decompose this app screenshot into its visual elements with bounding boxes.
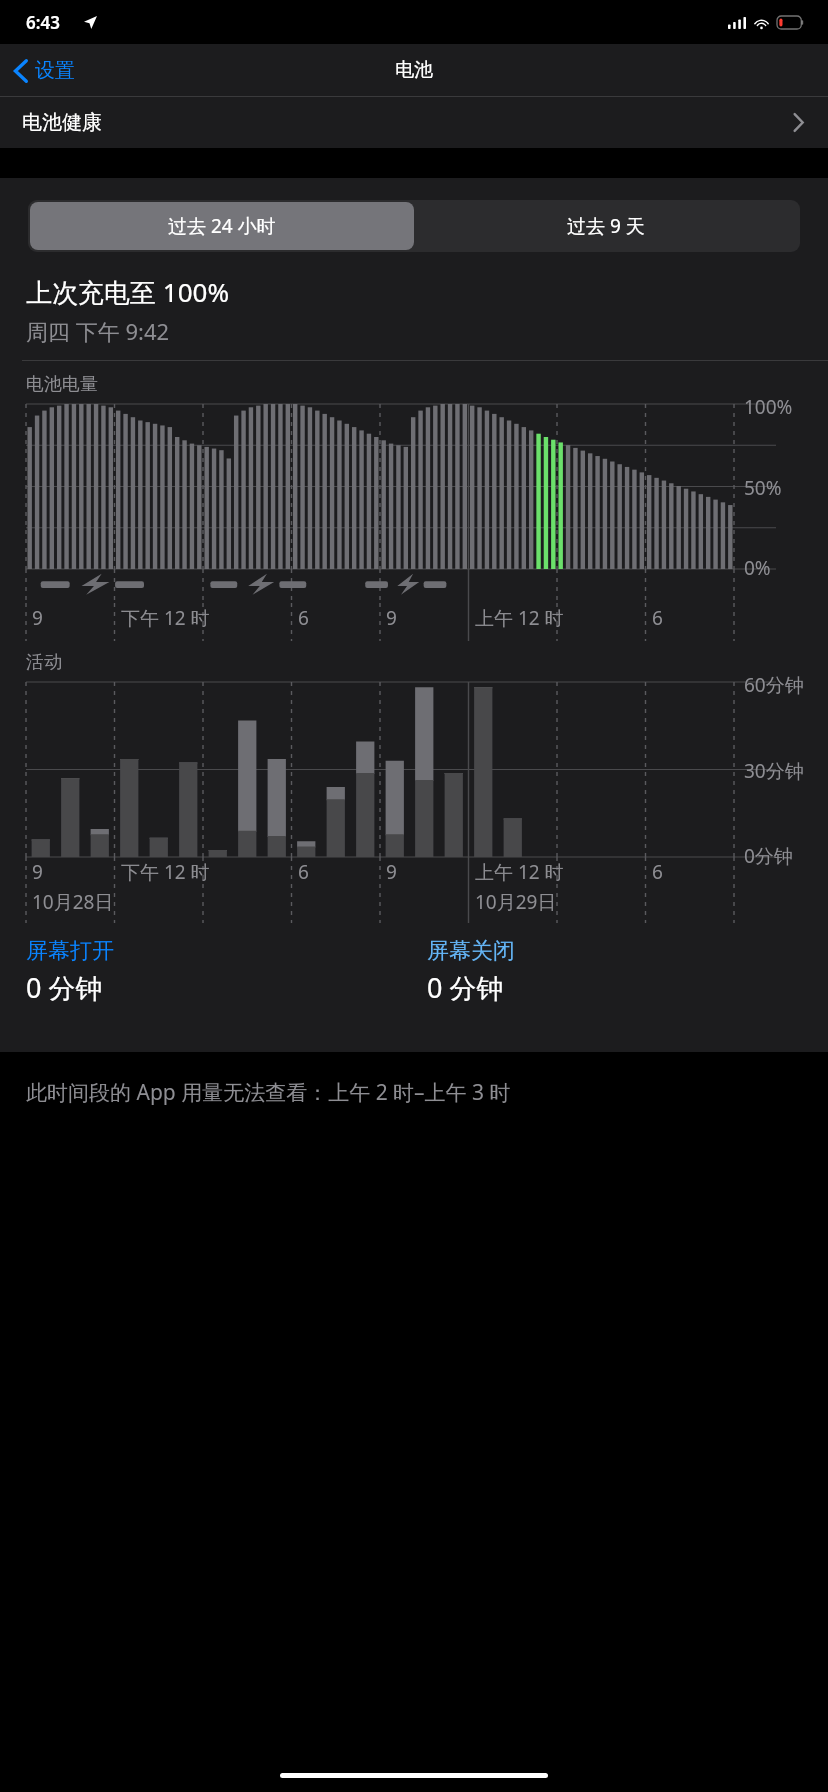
staticText: 下午 12 时 [121,859,210,885]
staticText: 活动 [26,651,62,674]
staticText: 电池健康 [22,110,102,135]
staticText: 周四 下午 9:42 [26,316,170,346]
staticText: 30分钟 [744,758,804,784]
staticText: 0 分钟 [26,969,103,1006]
staticText: 6 [298,605,309,631]
staticText: 上次充电至 100% [26,274,229,310]
staticText: 过去 9 天 [567,213,645,239]
staticText: 9 [32,859,43,885]
staticText: 此时间段的 App 用量无法查看：上午 2 时–上午 3 时 [26,1078,511,1107]
button[interactable]: 电池健康 [0,97,828,148]
staticText: 6:43 [26,11,60,34]
staticText: 6 [652,859,663,885]
button[interactable]: 过去 24 小时 [30,202,414,250]
staticText: 屏幕打开 [26,937,114,965]
staticText: 10月28日 [32,889,114,915]
staticText: 0分钟 [744,843,793,869]
staticText: 电池电量 [26,373,98,396]
staticText: 9 [386,605,397,631]
staticText: 过去 24 小时 [168,213,276,239]
staticText: 电池 [395,58,433,82]
button[interactable]: 屏幕打开 [26,937,427,1006]
staticText: 屏幕关闭 [427,937,515,965]
staticText: 0 分钟 [427,969,504,1006]
staticText: 设置 [35,58,75,83]
staticText: 100% [744,394,793,420]
staticText: 9 [32,605,43,631]
staticText: 上午 12 时 [475,605,564,631]
button[interactable]: 屏幕关闭 [427,937,828,1006]
staticText: 0% [744,555,771,581]
staticText: 50% [744,475,782,501]
staticText: 10月29日 [475,889,557,915]
staticText: 60分钟 [744,672,804,698]
button[interactable]: 设置 [0,52,87,89]
staticText: 9 [386,859,397,885]
button[interactable]: 过去 9 天 [414,202,798,250]
staticText: 6 [298,859,309,885]
staticText: 6 [652,605,663,631]
staticText: 上午 12 时 [475,859,564,885]
staticText: 下午 12 时 [121,605,210,631]
